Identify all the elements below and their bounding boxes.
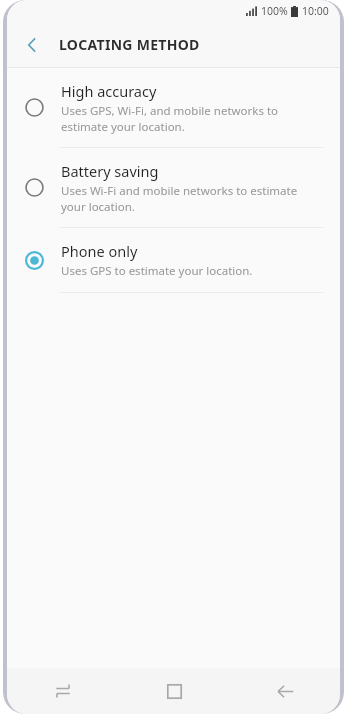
staticText: Uses GPS, Wi-Fi, and mobile networks to … [61,103,279,134]
button[interactable]: Phone only [7,228,340,292]
staticText: Uses Wi-Fi and mobile networks to estima… [61,183,298,214]
button[interactable]: Back [257,668,313,714]
staticText: 100% [261,4,288,18]
staticText: Phone only [61,241,138,261]
staticText: High accuracy [61,81,157,101]
staticText: Uses GPS to estimate your location. [61,263,253,279]
button[interactable]: High accuracy [7,68,340,147]
staticText: Battery saving [61,161,159,181]
staticText: LOCATING METHOD [59,35,200,54]
button[interactable]: Battery saving [7,148,340,227]
button[interactable]: Back [15,28,49,62]
button[interactable]: Recent apps [35,668,91,714]
staticText: 10:00 [302,4,329,18]
button[interactable]: Home [146,668,202,714]
